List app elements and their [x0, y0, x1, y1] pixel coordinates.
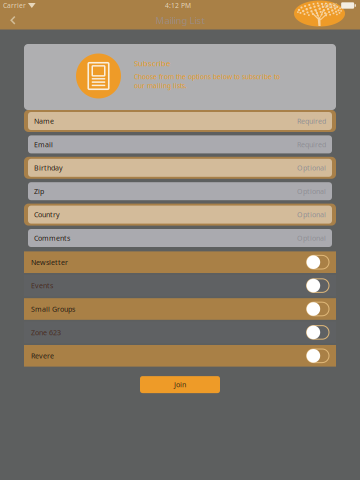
button[interactable]: Home — [294, 0, 345, 26]
button[interactable]: Revere — [24, 345, 336, 367]
button[interactable]: Newsletter — [24, 251, 336, 273]
staticText: Required — [297, 140, 326, 149]
button[interactable]: Comments — [24, 227, 336, 249]
staticText: Subscribe — [134, 58, 170, 68]
button[interactable]: Events — [24, 275, 336, 296]
button[interactable]: Birthday — [24, 157, 336, 179]
staticText: Comments — [34, 233, 70, 243]
staticText: Revere — [31, 351, 54, 361]
staticText: Name — [34, 116, 54, 126]
button[interactable]: Back — [0, 11, 26, 29]
staticText: Required — [297, 116, 326, 126]
staticText: Optional — [297, 233, 326, 243]
button[interactable]: Zip — [24, 180, 336, 202]
staticText: Small Groups — [31, 304, 75, 314]
staticText: Mailing List — [155, 14, 204, 27]
staticText: Country — [34, 210, 60, 219]
staticText: Newsletter — [31, 257, 68, 267]
button[interactable]: Small Groups — [24, 298, 336, 320]
button[interactable]: Email — [24, 133, 336, 155]
staticText: Join — [174, 380, 186, 389]
button[interactable]: Name — [24, 110, 336, 132]
staticText: Optional — [297, 186, 326, 196]
staticText: Optional — [297, 210, 326, 219]
staticText: Zone 623 — [31, 328, 61, 337]
staticText: Carrier — [3, 1, 26, 10]
staticText: Optional — [297, 163, 326, 173]
button[interactable]: Zone 623 — [24, 322, 336, 343]
button[interactable]: Country — [24, 204, 336, 226]
staticText: 100% — [320, 1, 338, 10]
button[interactable]: Join — [140, 376, 220, 393]
staticText: 4:12 PM — [165, 1, 191, 10]
staticText: Events — [31, 281, 53, 290]
staticText: Choose from the options below to subscri… — [134, 72, 280, 90]
staticText: Birthday — [34, 163, 63, 173]
staticText: Email — [34, 140, 53, 149]
staticText: Zip — [34, 186, 44, 196]
